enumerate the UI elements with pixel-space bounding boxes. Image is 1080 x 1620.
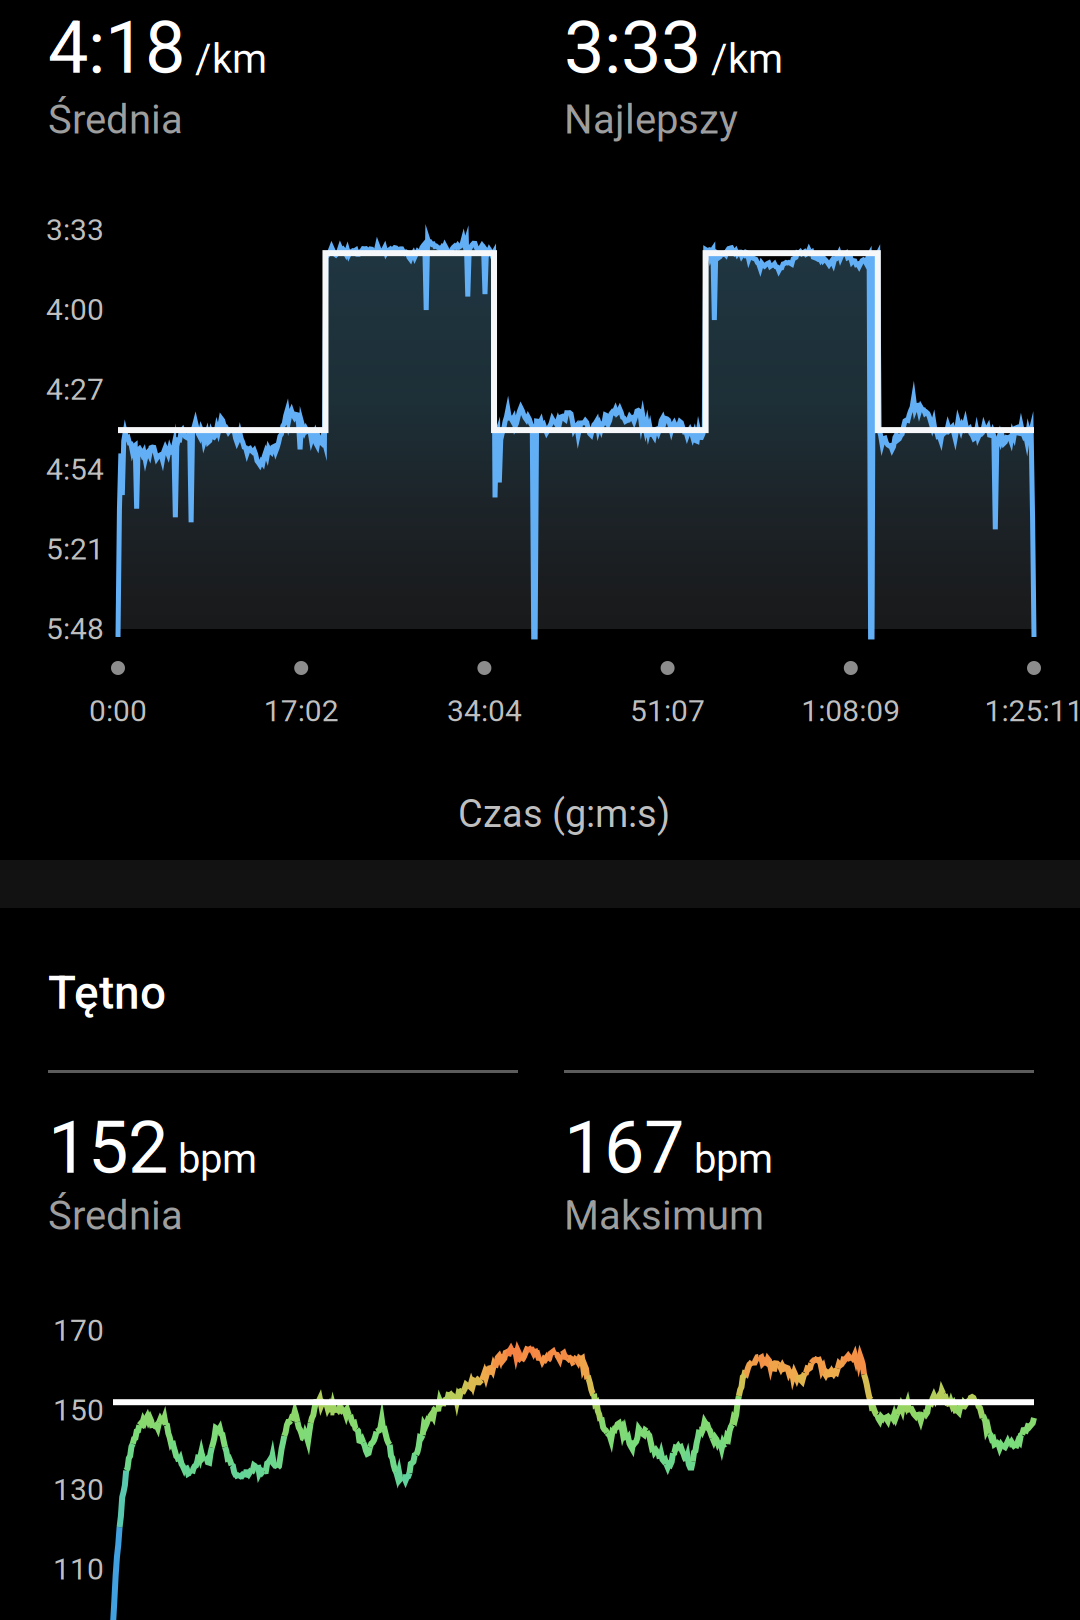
staticText: 170 (53, 1313, 104, 1348)
staticText: 167 (564, 1106, 684, 1190)
staticText: 1:25:11 (984, 693, 1080, 729)
staticText: 152 (48, 1106, 168, 1190)
staticText: bpm (694, 1136, 773, 1183)
staticText: 5:48 (46, 611, 104, 647)
staticText: 1:08:09 (801, 693, 900, 729)
staticText: 110 (53, 1552, 104, 1587)
button[interactable]: 152 (48, 1106, 564, 1232)
staticText: /km (711, 36, 783, 83)
staticText: /km (195, 36, 267, 83)
staticText: 4:27 (46, 372, 104, 407)
button[interactable]: 3:33 (564, 6, 1080, 136)
staticText: Tętno (48, 966, 166, 1020)
button[interactable]: 4:18 (48, 6, 564, 136)
staticText: Maksimum (564, 1192, 764, 1239)
staticText: 4:00 (46, 292, 104, 327)
staticText: 0:00 (89, 693, 147, 729)
staticText: 17:02 (264, 693, 339, 729)
staticText: Średnia (48, 1192, 183, 1239)
staticText: 34:04 (447, 693, 522, 729)
staticText: Średnia (48, 96, 183, 143)
staticText: 3:33 (564, 6, 701, 90)
staticText: 4:18 (48, 6, 185, 90)
button[interactable]: 167 (564, 1106, 1080, 1232)
staticText: Czas (g:m:s) (458, 792, 670, 836)
staticText: 150 (53, 1393, 104, 1428)
staticText: 5:21 (46, 532, 104, 567)
staticText: bpm (178, 1136, 257, 1183)
staticText: 130 (53, 1472, 104, 1507)
staticText: Najlepszy (564, 96, 738, 143)
staticText: 3:33 (46, 212, 104, 248)
staticText: 51:07 (630, 693, 705, 729)
staticText: 4:54 (46, 452, 104, 487)
